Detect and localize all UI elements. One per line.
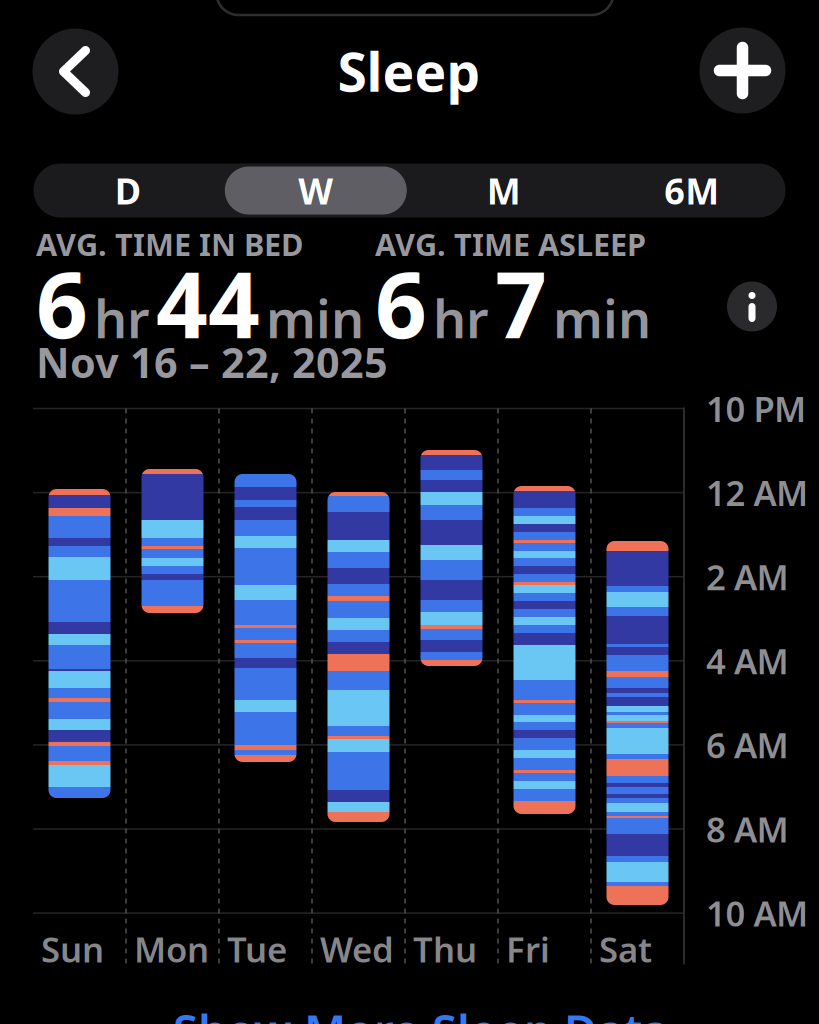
staticText: D (115, 167, 141, 214)
staticText: Sleep (337, 36, 480, 106)
button[interactable]: M (410, 163, 598, 217)
staticText: Mon (134, 926, 209, 972)
staticText: 4 AM (706, 638, 788, 684)
button[interactable] (32, 28, 118, 114)
staticText: Sat (599, 926, 652, 972)
staticText: min (553, 283, 651, 353)
staticText: Show More Sleep Data (173, 1000, 669, 1024)
button[interactable]: D (34, 163, 222, 217)
staticText: 8 AM (706, 806, 788, 852)
staticText: 12 AM (706, 470, 808, 516)
staticText: Nov 16 – 22, 2025 (36, 335, 388, 389)
button[interactable] (699, 27, 785, 113)
staticText: 6 (36, 243, 88, 363)
staticText: 44 (156, 243, 260, 363)
button[interactable]: 6M (598, 163, 786, 217)
staticText: hr (94, 283, 150, 353)
staticText: 10 PM (706, 385, 806, 431)
button[interactable] (727, 281, 777, 331)
staticText: M (487, 167, 521, 214)
staticText: Fri (506, 926, 550, 972)
staticText: W (298, 167, 333, 214)
staticText: Tue (227, 926, 287, 972)
staticText: 10 AM (706, 890, 808, 936)
staticText: 2 AM (706, 554, 788, 600)
staticText: Sun (41, 926, 104, 972)
staticText: Wed (320, 926, 394, 972)
button[interactable]: W (222, 163, 410, 217)
staticText: 6 (375, 243, 427, 363)
staticText: AVG. TIME ASLEEP (375, 224, 646, 264)
staticText: min (266, 283, 364, 353)
button[interactable]: Show More Sleep Data (173, 1000, 669, 1024)
staticText: hr (433, 283, 489, 353)
staticText: 7 (495, 243, 547, 363)
staticText: 6M (664, 167, 719, 214)
staticText: 6 AM (706, 722, 788, 768)
staticText: Thu (413, 926, 477, 972)
staticText: AVG. TIME IN BED (36, 224, 303, 264)
